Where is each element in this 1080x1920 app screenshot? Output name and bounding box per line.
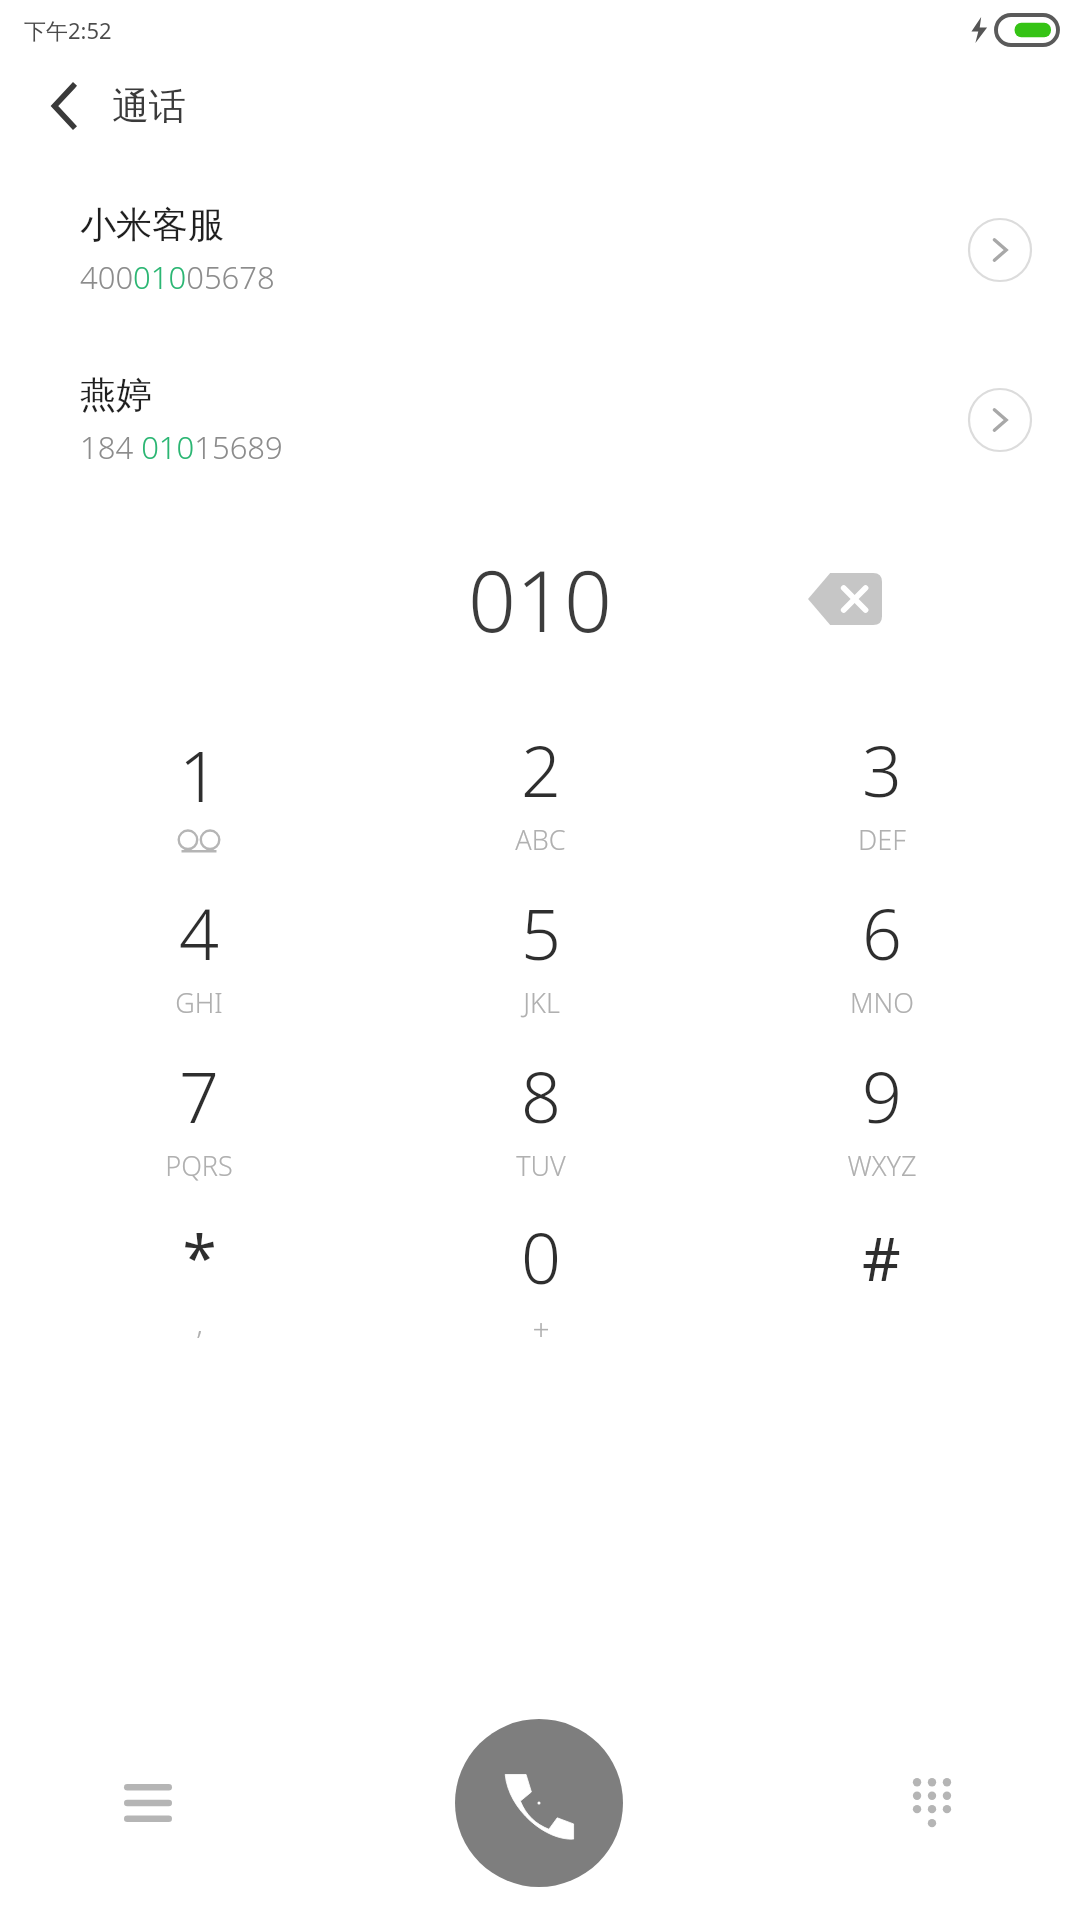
button[interactable]: 1 [28,708,370,871]
button[interactable]: * [28,1197,370,1360]
staticText: 6 [862,885,902,980]
button[interactable]: 5 [370,871,711,1034]
staticText: 184 01015689 [80,426,283,468]
staticText: GHI [175,984,223,1021]
button[interactable]: 3 [711,708,1052,871]
button[interactable]: 0 [370,1197,711,1360]
button[interactable]: 小米客服 [0,196,1080,304]
button[interactable]: 7 [28,1034,370,1197]
button[interactable]: 4 [28,871,370,1034]
staticText: + [532,1308,550,1349]
staticText: DEF [858,821,906,858]
staticText: 4 [179,885,219,980]
staticText: 燕婷 [80,372,152,417]
staticText: 下午2:52 [24,15,112,45]
staticText: TUV [516,1147,566,1184]
button[interactable]: Open contact details [968,218,1032,282]
staticText: * [182,1214,217,1298]
staticText: JKL [523,984,560,1021]
staticText: ABC [515,821,566,858]
button[interactable]: 8 [370,1034,711,1197]
staticText: MNO [850,984,914,1021]
staticText: 3 [862,722,902,817]
button[interactable]: 9 [711,1034,1052,1197]
staticText: 8 [521,1048,561,1143]
button[interactable]: Call log [100,1755,196,1851]
staticText: 010 [468,542,612,656]
button[interactable]: Call [455,1719,623,1887]
staticText: , [196,1302,203,1343]
button[interactable]: 2 [370,708,711,871]
staticText: 小米客服 [80,202,224,247]
staticText: # [862,1217,901,1299]
staticText: 5 [521,885,561,980]
button[interactable]: Back [30,72,98,140]
staticText: 2 [521,722,561,817]
staticText: 通话 [112,83,186,130]
staticText: 0 [521,1209,561,1304]
staticText: 40001005678 [80,256,275,298]
staticText: 9 [862,1048,902,1143]
staticText: PQRS [165,1147,233,1184]
button[interactable]: Open contact details [968,388,1032,452]
button[interactable]: Delete [800,564,890,634]
staticText: 7 [179,1048,219,1143]
staticText: WXYZ [847,1147,917,1184]
button[interactable]: Dialpad [884,1755,980,1851]
button[interactable]: # [711,1197,1052,1360]
button[interactable]: 6 [711,871,1052,1034]
staticText: 1 [179,727,219,822]
button[interactable]: 燕婷 [0,366,1080,474]
